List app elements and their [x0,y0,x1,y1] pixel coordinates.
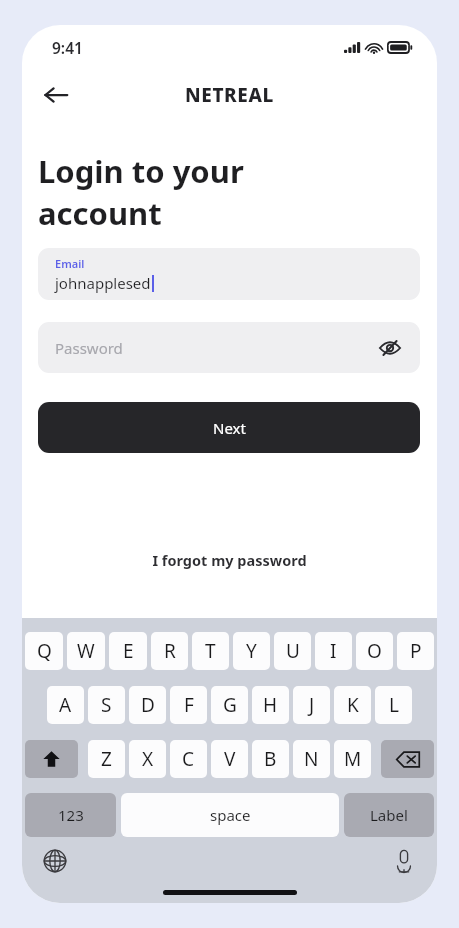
staticText: Label [370,805,408,825]
staticText: K [347,692,359,718]
button[interactable]: Email [38,248,420,300]
button[interactable]: U [274,632,311,670]
staticText: O [367,638,382,664]
button[interactable]: 123 [25,793,116,837]
button[interactable]: I [315,632,352,670]
button[interactable]: space [121,793,339,837]
staticText: I forgot my password [152,550,307,570]
staticText: R [164,638,176,664]
button[interactable]: T [192,632,229,670]
button[interactable]: Shift [25,740,78,778]
button[interactable]: K [334,686,371,724]
button[interactable]: G [211,686,248,724]
button[interactable]: Next [38,402,420,453]
button[interactable]: Back [34,73,78,117]
button[interactable]: R [151,632,188,670]
button[interactable]: Change keyboard language [38,844,72,878]
staticText: F [184,692,194,718]
staticText: S [101,692,112,718]
staticText: NETREAL [185,82,274,108]
button[interactable]: V [211,740,248,778]
staticText: space [210,805,251,825]
button[interactable]: J [293,686,330,724]
staticText: D [141,692,155,718]
staticText: W [77,638,95,664]
staticText: C [182,746,195,772]
staticText: L [389,692,399,718]
button[interactable]: Z [88,740,125,778]
button[interactable]: F [170,686,207,724]
staticText: P [410,638,422,664]
staticText: account [38,192,162,234]
button[interactable]: Show password [372,330,408,366]
button[interactable]: P [397,632,434,670]
button[interactable]: E [109,632,147,670]
staticText: J [309,692,315,718]
staticText: Z [101,746,112,772]
staticText: Y [246,638,257,664]
staticText: G [223,692,237,718]
button[interactable]: Voice input [387,844,421,878]
staticText: Next [213,418,246,438]
staticText: T [205,638,216,664]
staticText: M [344,746,362,772]
button[interactable]: N [293,740,330,778]
staticText: 9:41 [52,37,83,58]
button[interactable]: O [356,632,393,670]
button[interactable]: D [129,686,166,724]
staticText: johnapplesed [55,273,151,293]
staticText: U [286,638,300,664]
button[interactable]: S [88,686,125,724]
button[interactable]: I forgot my password [22,543,437,577]
button[interactable]: M [334,740,371,778]
button[interactable]: Label [344,793,434,837]
staticText: 123 [58,805,84,825]
staticText: Login to your [38,150,244,192]
button[interactable]: X [129,740,166,778]
button[interactable]: Q [25,632,63,670]
button[interactable]: Y [233,632,270,670]
staticText: E [123,638,134,664]
button[interactable]: A [47,686,84,724]
staticText: A [59,692,72,718]
staticText: N [304,746,319,772]
staticText: Password [55,338,123,358]
button[interactable]: H [252,686,289,724]
button[interactable]: Backspace [381,740,434,778]
staticText: H [263,692,278,718]
button[interactable]: L [375,686,412,724]
staticText: I [330,638,337,664]
button[interactable]: C [170,740,207,778]
button[interactable]: W [67,632,105,670]
button[interactable]: Password [38,322,420,373]
staticText: Email [55,256,85,271]
staticText: B [264,746,277,772]
staticText: Q [37,638,52,664]
staticText: V [224,746,236,772]
staticText: X [142,746,154,772]
button[interactable]: B [252,740,289,778]
